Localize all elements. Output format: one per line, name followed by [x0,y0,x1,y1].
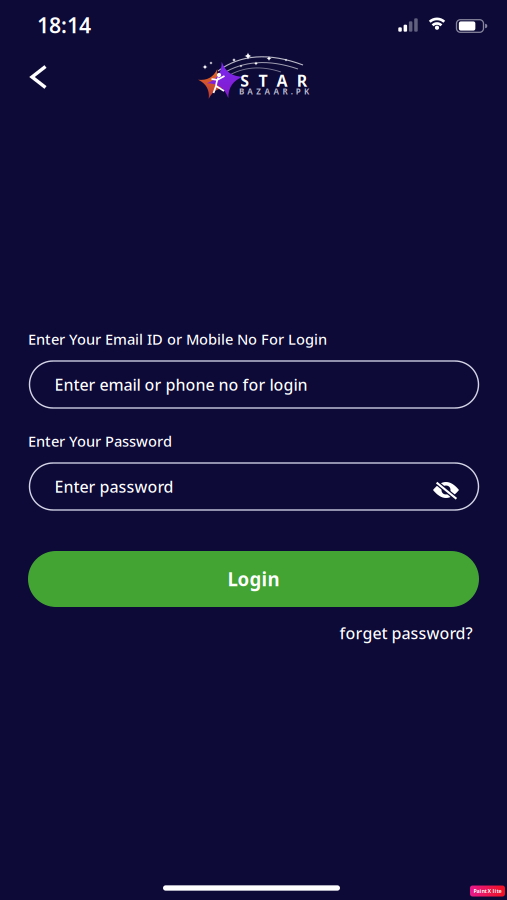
staticText: Login [227,567,279,591]
staticText: S T A R [240,70,307,91]
button[interactable]: Enter email or phone no for login [29,361,478,408]
button[interactable]: Show password [424,470,468,510]
staticText: Paint X lite [473,887,501,895]
staticText: Enter Your Password [28,431,172,451]
button[interactable]: Back [17,55,61,99]
staticText: Enter password [54,476,173,497]
button[interactable]: Login [28,551,479,607]
staticText: 18:14 [37,11,91,39]
button[interactable]: Enter password [29,463,478,510]
staticText: forget password? [339,622,472,644]
button[interactable]: forget password? [339,622,472,644]
staticText: BAZAAR.PK [239,86,309,97]
staticText: Enter Your Email ID or Mobile No For Log… [28,329,327,349]
staticText: Enter email or phone no for login [54,374,307,395]
